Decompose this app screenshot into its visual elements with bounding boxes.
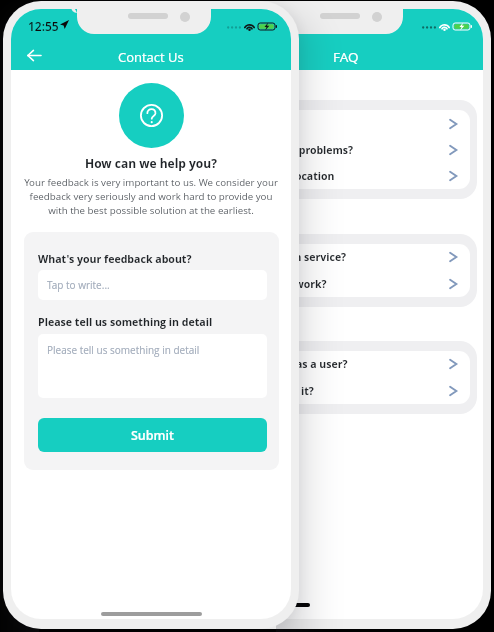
staticText: Change my location	[231, 169, 449, 183]
staticText: Problem with service?	[231, 250, 449, 264]
staticText: FAQ	[333, 48, 359, 66]
staticText: Submit	[131, 427, 174, 444]
staticText: Your feedback is very important to us. W…	[22, 176, 280, 217]
staticText: Any delivery problems?	[231, 143, 449, 157]
staticText: Please tell us something in detail	[47, 343, 200, 357]
button[interactable]: Back	[16, 37, 52, 73]
staticText: 12:55	[28, 18, 59, 34]
staticText: Register me as a user?	[231, 357, 449, 371]
staticText: Tap to write...	[47, 278, 110, 292]
staticText: Where to get it?	[231, 384, 449, 398]
button[interactable]: How does it work?	[215, 270, 470, 297]
staticText: How does it work?	[231, 277, 449, 291]
button[interactable]: Change my location	[215, 163, 470, 189]
button[interactable]: Please tell us something in detail	[38, 334, 267, 398]
button[interactable]: Register me as a user?	[215, 351, 470, 377]
button[interactable]: Problem with service?	[215, 244, 470, 270]
button[interactable]: Where to get it?	[215, 377, 470, 404]
button[interactable]: My orders	[215, 110, 470, 137]
staticText: My orders	[231, 117, 449, 131]
staticText: What's your feedback about?	[38, 252, 192, 266]
staticText: Contact Us	[118, 48, 184, 66]
button[interactable]: Any delivery problems?	[215, 137, 470, 163]
staticText: How can we help you?	[85, 155, 217, 171]
button[interactable]: Submit	[38, 418, 267, 452]
staticText: Please tell us something in detail	[38, 315, 213, 329]
button[interactable]: Tap to write...	[38, 270, 267, 300]
